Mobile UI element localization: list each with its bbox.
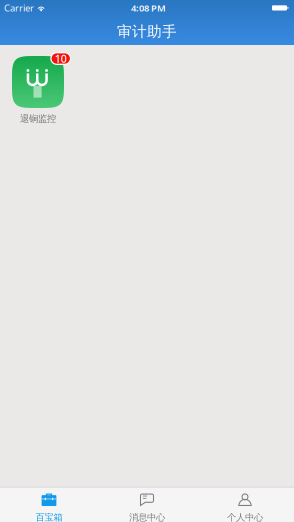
button[interactable]: 10 xyxy=(12,56,64,124)
staticText: Carrier xyxy=(4,2,34,14)
staticText: 个人中心 xyxy=(227,512,263,522)
staticText: 百宝箱 xyxy=(35,512,62,522)
button[interactable]: 百宝箱 xyxy=(0,488,98,522)
staticText: 审计助手 xyxy=(117,22,177,40)
staticText: 消息中心 xyxy=(129,512,165,522)
button[interactable]: 消息中心 xyxy=(98,488,196,522)
button[interactable]: 个人中心 xyxy=(196,488,294,522)
staticText: 退锏监控 xyxy=(20,113,56,124)
staticText: 10 xyxy=(55,51,67,66)
staticText: 4:08 PM xyxy=(131,2,166,14)
